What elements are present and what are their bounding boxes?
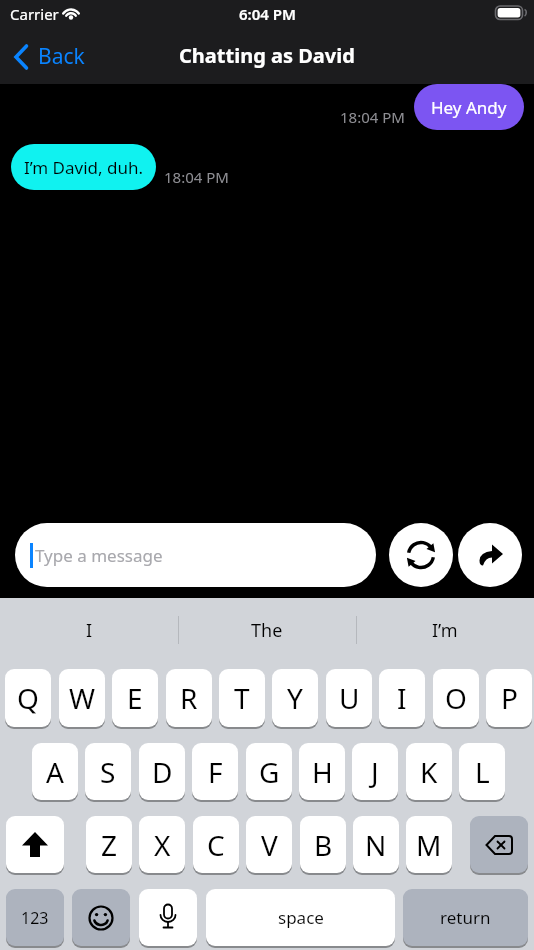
button[interactable]: L [459,743,505,800]
button[interactable]: J [352,743,398,800]
staticText: W [69,679,96,717]
staticText: return [440,906,491,929]
staticText: H [312,753,333,791]
staticText: 123 [21,907,49,929]
button[interactable]: S [85,743,131,800]
button[interactable]: Back [8,40,98,74]
button[interactable]: I’m David, duh. [11,144,156,190]
button[interactable]: I [379,669,425,727]
button[interactable] [389,523,453,587]
staticText: 18:04 PM [164,167,229,187]
staticText: Type a message [35,544,163,567]
button[interactable] [72,889,130,946]
staticText: G [259,753,280,791]
button[interactable]: Hey Andy [414,84,524,130]
staticText: F [208,753,223,791]
button[interactable]: Q [5,669,51,727]
staticText: Y [287,679,303,717]
button[interactable]: A [32,743,78,800]
staticText: C [207,826,225,864]
staticText: Carrier [10,4,59,24]
button[interactable]: return [403,889,528,946]
staticText: J [371,753,379,791]
staticText: space [278,906,324,929]
staticText: 18:04 PM [340,107,405,127]
button[interactable] [458,523,522,587]
staticText: D [152,753,173,791]
staticText: Z [101,826,118,864]
staticText: I [397,679,407,717]
button[interactable]: M [406,816,452,873]
staticText: Back [38,42,85,71]
staticText: 6:04 PM [239,4,296,24]
staticText: X [154,826,171,864]
button[interactable]: Type a message [15,523,376,587]
button[interactable]: B [300,816,346,873]
staticText: V [261,826,278,864]
staticText: L [475,753,490,791]
button[interactable]: I’m [356,598,534,662]
button[interactable]: Z [86,816,132,873]
staticText: Q [17,679,39,717]
button[interactable]: V [246,816,292,873]
button[interactable]: P [486,669,532,727]
button[interactable]: Y [272,669,318,727]
staticText: Hey Andy [431,96,507,119]
staticText: M [416,826,442,864]
button[interactable]: G [246,743,292,800]
button[interactable]: The [178,598,356,662]
button[interactable]: C [193,816,239,873]
button[interactable]: D [139,743,185,800]
staticText: The [251,618,283,643]
staticText: U [339,679,360,717]
button[interactable]: K [406,743,452,800]
staticText: T [234,679,250,717]
button[interactable] [6,816,64,873]
button[interactable]: H [299,743,345,800]
button[interactable]: T [219,669,265,727]
button[interactable]: 123 [6,889,64,946]
staticText: K [420,753,438,791]
button[interactable] [470,816,528,873]
staticText: I’m David, duh. [24,156,143,179]
staticText: N [365,826,387,864]
staticText: I [86,618,93,643]
staticText: O [445,679,467,717]
button[interactable]: X [139,816,185,873]
staticText: A [46,753,64,791]
staticText: Chatting as David [179,42,355,69]
button[interactable]: R [166,669,212,727]
button[interactable]: I [0,598,178,662]
staticText: E [127,679,143,717]
staticText: B [314,826,333,864]
staticText: P [501,679,518,717]
button[interactable]: F [192,743,238,800]
button[interactable]: W [59,669,105,727]
button[interactable]: N [353,816,399,873]
button[interactable]: U [326,669,372,727]
button[interactable]: space [206,889,395,946]
staticText: S [100,753,116,791]
button[interactable] [139,889,197,946]
staticText: R [180,679,198,717]
staticText: I’m [432,618,458,643]
button[interactable]: E [112,669,158,727]
button[interactable]: O [433,669,479,727]
